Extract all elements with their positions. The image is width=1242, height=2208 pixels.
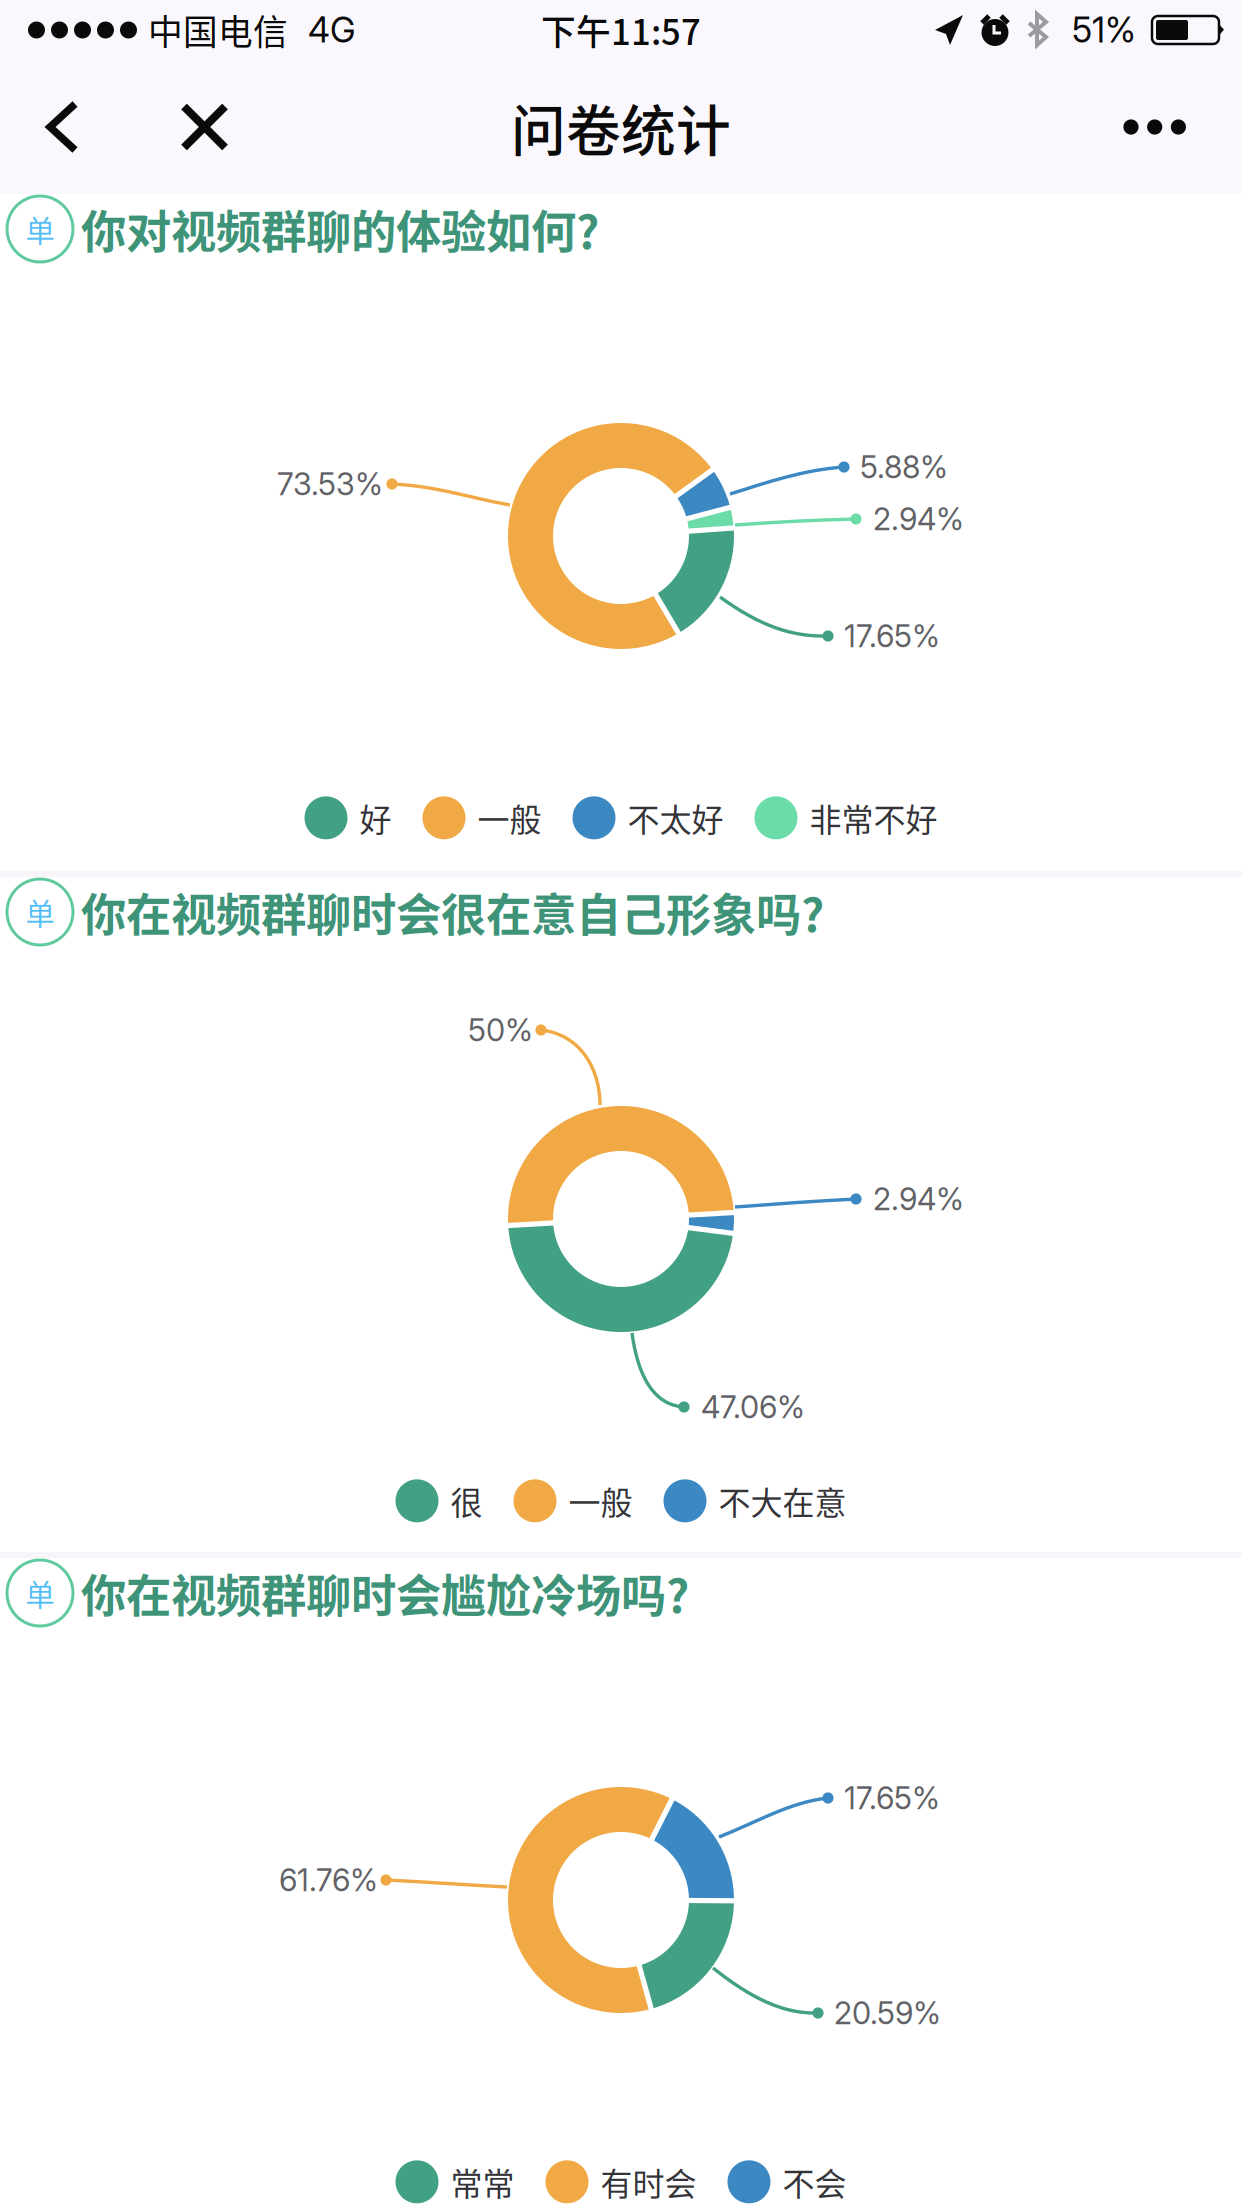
staticText: 单 (25, 208, 54, 250)
staticText: 下午11:57 (541, 5, 701, 55)
staticText: 问卷统计 (511, 87, 731, 167)
staticText: 你在视频群聊时会很在意自己形象吗? (81, 879, 824, 945)
staticText: 好 (359, 795, 391, 841)
staticText: 单 (25, 1572, 54, 1614)
staticText: 4G (308, 9, 356, 51)
staticText: 一般 (477, 795, 541, 841)
staticText: 17.65% (844, 617, 940, 654)
staticText: 很 (450, 1478, 482, 1524)
staticText: 5.88% (860, 448, 948, 485)
staticText: 2.94% (873, 500, 964, 537)
staticText: 61.76% (279, 1861, 378, 1898)
staticText: 一般 (568, 1478, 632, 1524)
staticText: 不会 (782, 2159, 846, 2205)
staticText: 20.59% (834, 1994, 941, 2031)
button[interactable]: More (1076, 97, 1186, 157)
button[interactable]: Close (180, 103, 229, 150)
staticText: 非常不好 (809, 795, 937, 841)
staticText: 50% (468, 1011, 533, 1048)
staticText: 中国电信 (148, 5, 288, 55)
staticText: 单 (25, 891, 54, 933)
staticText: 你在视频群聊时会尴尬冷场吗? (81, 1560, 689, 1626)
staticText: 2.94% (873, 1180, 964, 1217)
staticText: 你对视频群聊的体验如何? (81, 196, 599, 262)
button[interactable]: Back (45, 99, 80, 155)
staticText: 有时会 (600, 2159, 696, 2205)
staticText: 47.06% (701, 1388, 805, 1425)
staticText: 常常 (450, 2159, 514, 2205)
staticText: 17.65% (844, 1779, 940, 1816)
staticText: 不太好 (627, 795, 723, 841)
staticText: 51% (1072, 9, 1136, 51)
staticText: 73.53% (277, 465, 383, 502)
staticText: 不大在意 (718, 1478, 846, 1524)
